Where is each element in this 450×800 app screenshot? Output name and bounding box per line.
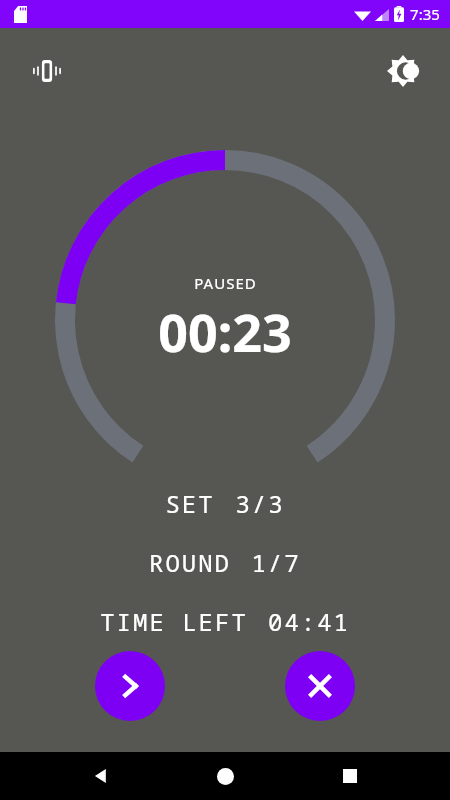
button[interactable]: Home [201,752,249,800]
staticText: 7:35 [410,4,440,24]
staticText: TIME LEFT [100,605,248,638]
staticText: 3/3 [235,487,285,520]
staticText: PAUSED [194,273,257,293]
staticText: 1/7 [251,546,301,579]
button[interactable]: Vibration [24,48,70,94]
staticText: ROUND [149,546,231,579]
staticText: SET [165,487,215,520]
button[interactable]: Back [77,752,125,800]
staticText: 04:41 [268,605,350,638]
button[interactable]: Night mode [380,48,426,94]
button[interactable]: Recents [326,752,374,800]
staticText: 00:23 [158,296,292,367]
button[interactable]: Stop [285,651,355,721]
button[interactable]: Resume [95,651,165,721]
